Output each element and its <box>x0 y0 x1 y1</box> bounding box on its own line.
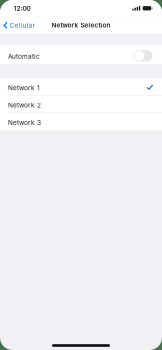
staticText: Network 3 <box>8 119 41 126</box>
staticText: Automatic <box>8 52 40 60</box>
button[interactable]: Network 3 <box>0 113 162 130</box>
staticText: 12:00 <box>13 4 30 12</box>
button[interactable]: Network 1 <box>0 78 162 96</box>
staticText: Cellular <box>9 21 35 29</box>
button[interactable]: Network 2 <box>0 96 162 113</box>
staticText: Network Selection <box>51 21 110 29</box>
button[interactable]: Automatic <box>0 45 162 64</box>
staticText: Network 1 <box>8 84 40 92</box>
staticText: Network 2 <box>8 101 41 109</box>
button[interactable]: Cellular <box>0 18 37 33</box>
